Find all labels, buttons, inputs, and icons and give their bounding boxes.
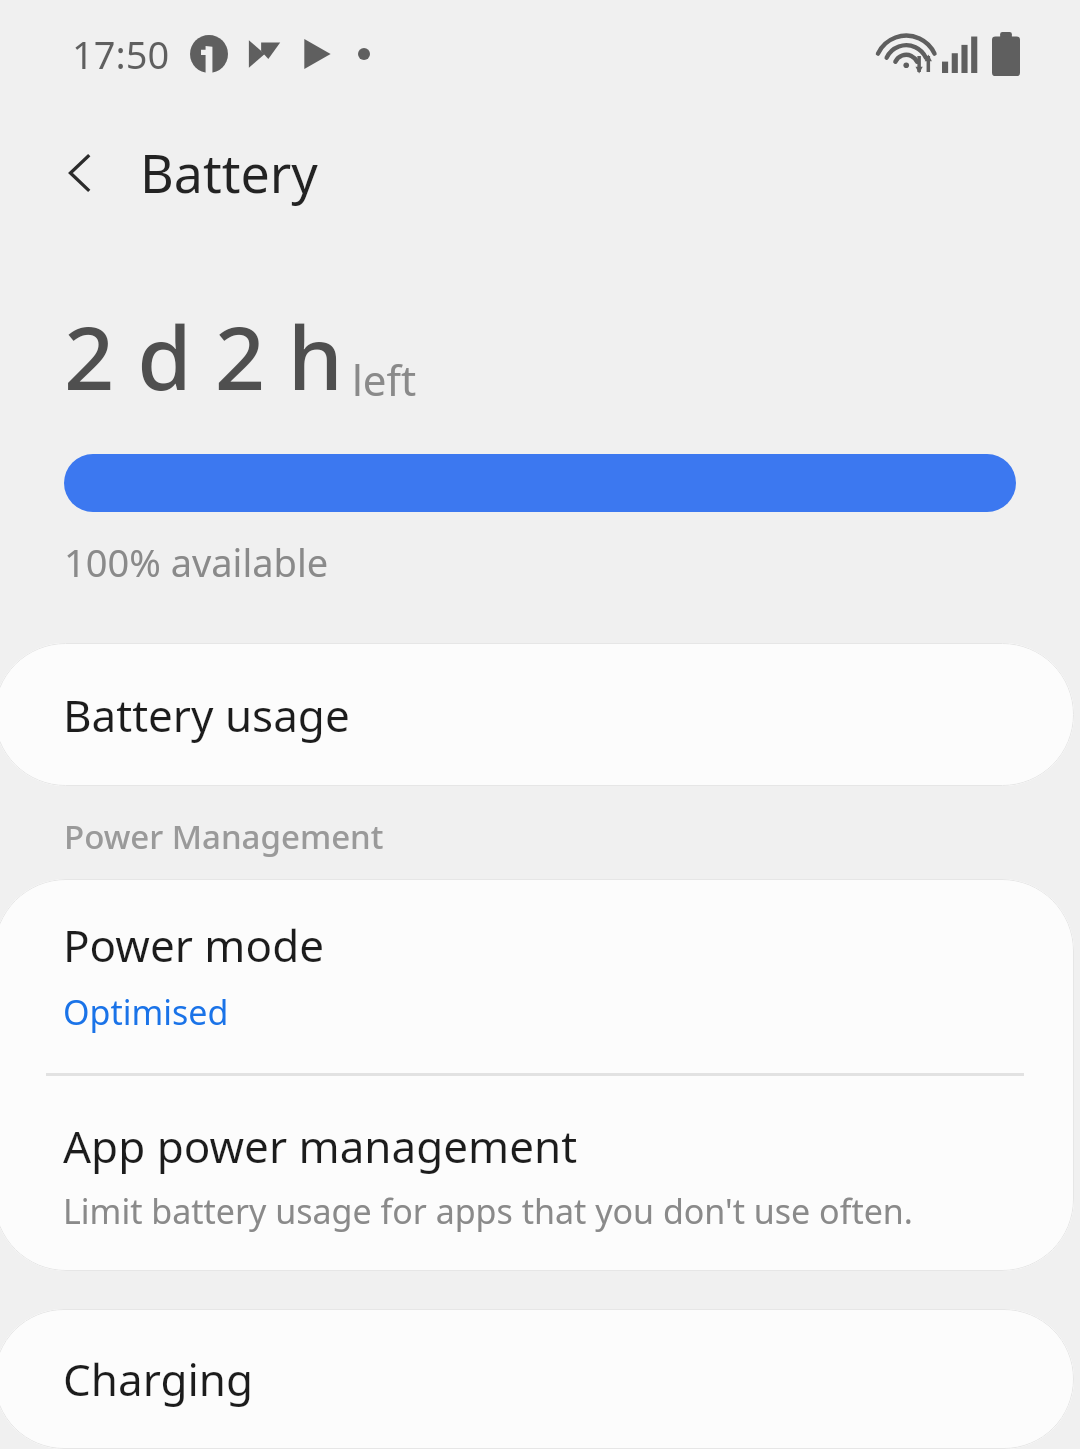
staticText: Battery (140, 137, 318, 208)
button[interactable]: Back (46, 138, 116, 208)
staticText: Limit battery usage for apps that you do… (63, 1188, 913, 1234)
button[interactable]: Power mode (0, 879, 1074, 1271)
button[interactable]: Power mode (0, 879, 1074, 1073)
staticText: 100% available (64, 536, 329, 588)
staticText: 17:50 (72, 28, 170, 80)
staticText: left (352, 351, 417, 408)
button[interactable]: Charging (0, 1309, 1074, 1449)
staticText: 2 d 2 h (64, 296, 344, 416)
staticText: Battery usage (63, 685, 350, 745)
button[interactable]: App power management (0, 1076, 1074, 1271)
staticText: Charging (63, 1349, 254, 1409)
staticText: Power mode (63, 915, 325, 975)
staticText: Optimised (63, 989, 229, 1035)
button[interactable]: Battery usage (0, 643, 1074, 786)
staticText: App power management (63, 1116, 578, 1176)
staticText: Power Management (64, 814, 384, 859)
